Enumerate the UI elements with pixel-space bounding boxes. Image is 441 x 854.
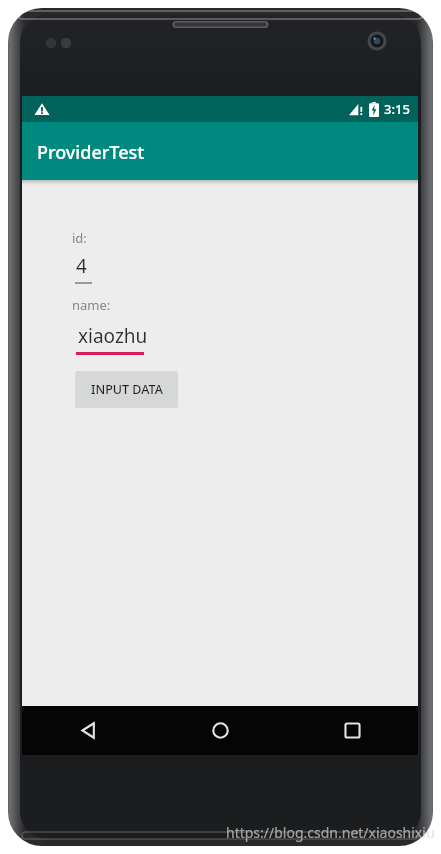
button[interactable]: xiaozhu xyxy=(74,323,160,355)
button[interactable]: INPUT DATA xyxy=(75,371,178,408)
staticText: name: xyxy=(72,296,111,314)
button[interactable]: Home xyxy=(154,706,286,755)
staticText: 4 xyxy=(76,253,87,279)
staticText: id: xyxy=(72,229,87,247)
staticText: xiaozhu xyxy=(78,323,148,349)
button[interactable]: 4 xyxy=(74,253,116,284)
button[interactable]: Back xyxy=(22,706,154,755)
button[interactable]: Recent apps xyxy=(286,706,418,755)
staticText: INPUT DATA xyxy=(91,381,163,398)
staticText: https://blog.csdn.net/xiaoshixiu xyxy=(226,823,435,842)
staticText: ProviderTest xyxy=(37,140,145,165)
staticText: 3:15 xyxy=(384,100,410,118)
